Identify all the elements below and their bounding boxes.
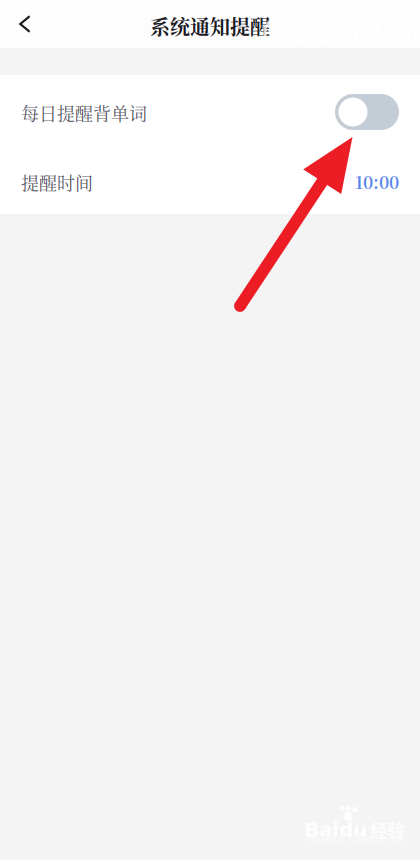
staticText: jingyan.baidu.com: [305, 833, 405, 845]
button[interactable]: Back: [0, 0, 50, 48]
staticText: Baidu: [304, 818, 367, 841]
staticText: 10:00: [355, 169, 399, 194]
staticText: 经验: [370, 817, 404, 842]
button[interactable]: 每日提醒背单词: [0, 75, 420, 145]
staticText: 系统通知提醒: [150, 12, 270, 40]
button[interactable]: 提醒时间: [0, 145, 420, 214]
staticText: 提醒时间: [21, 170, 93, 195]
staticText: 的经验_个人中心_百: [262, 15, 420, 47]
staticText: 每日提醒背单词: [21, 100, 147, 126]
